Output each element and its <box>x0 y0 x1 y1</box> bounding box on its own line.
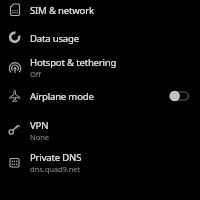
staticText: Airplane mode <box>30 90 94 103</box>
staticText: dns.quad9.net <box>30 164 81 174</box>
staticText: SIM & network <box>30 4 94 17</box>
button[interactable]: Private DNS <box>0 145 200 179</box>
button[interactable]: SIM & network <box>0 0 200 24</box>
button[interactable]: VPN <box>0 113 200 147</box>
staticText: Off <box>30 69 41 79</box>
staticText: Hotspot & tethering <box>30 56 117 69</box>
staticText: VPN <box>30 119 49 132</box>
staticText: None <box>30 132 49 142</box>
button[interactable]: Data usage <box>0 24 200 52</box>
staticText: Private DNS <box>30 151 82 164</box>
button[interactable]: Hotspot & tethering <box>0 50 200 84</box>
button[interactable]: Airplane mode <box>0 82 200 110</box>
staticText: Data usage <box>30 32 79 45</box>
